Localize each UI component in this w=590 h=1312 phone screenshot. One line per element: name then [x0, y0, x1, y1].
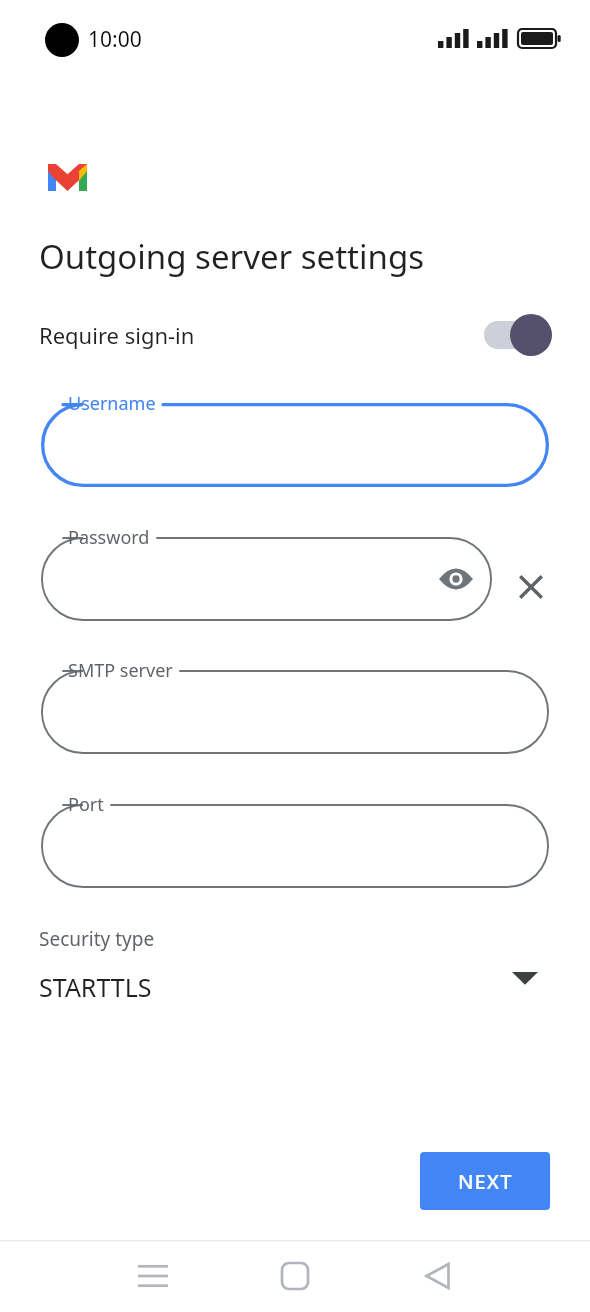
button[interactable]: SMTP server — [41, 670, 549, 754]
staticText: 10:00 — [88, 25, 142, 54]
staticText: Require sign-in — [39, 320, 195, 350]
button[interactable]: Port — [41, 804, 549, 888]
button[interactable]: Recents — [110, 1240, 196, 1312]
staticText: Password — [68, 525, 150, 550]
button[interactable]: NEXT — [420, 1152, 550, 1210]
staticText: STARTTLS — [39, 970, 152, 1004]
staticText: NEXT — [458, 1168, 513, 1195]
button[interactable]: Show password — [432, 555, 480, 603]
staticText: Outgoing server settings — [39, 234, 425, 279]
staticText: Port — [68, 792, 104, 817]
staticText: SMTP server — [68, 658, 173, 683]
button[interactable]: Require sign-in toggle — [484, 315, 550, 355]
button[interactable]: Home — [252, 1240, 338, 1312]
button[interactable]: Security type — [0, 920, 590, 1012]
button[interactable]: Back — [394, 1240, 480, 1312]
staticText: Username — [68, 391, 156, 416]
button[interactable]: Clear — [506, 562, 556, 612]
button[interactable]: Require sign-in — [0, 306, 590, 364]
button[interactable]: Username — [41, 403, 549, 487]
button[interactable]: Password — [41, 537, 492, 621]
staticText: Security type — [39, 926, 155, 952]
